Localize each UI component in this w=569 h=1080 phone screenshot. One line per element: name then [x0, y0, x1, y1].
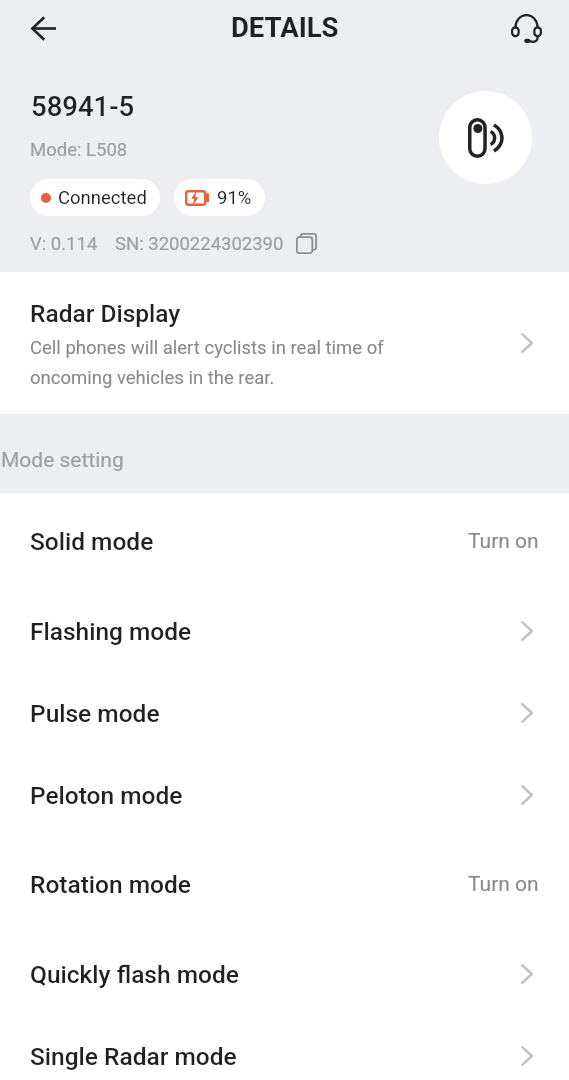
button[interactable]: Solid mode	[0, 493, 569, 590]
staticText: Flashing mode	[30, 617, 521, 646]
staticText: Mode setting	[1, 448, 124, 473]
staticText: SN: 3200224302390	[115, 233, 284, 255]
button[interactable]: Flashing mode	[0, 590, 569, 672]
staticText: DETAILS	[231, 11, 339, 43]
button[interactable]: Rotation mode	[0, 836, 569, 933]
staticText: Pulse mode	[30, 699, 521, 728]
button[interactable]: Connected	[30, 179, 160, 216]
button[interactable]: Pulse mode	[0, 672, 569, 754]
staticText: Turn on	[468, 529, 539, 554]
staticText: Radar Display	[30, 299, 181, 328]
staticText: Rotation mode	[30, 870, 462, 899]
staticText: Solid mode	[30, 527, 462, 556]
staticText: Quickly flash mode	[30, 960, 521, 989]
staticText: 58941-5	[31, 90, 135, 122]
button[interactable]: Quickly flash mode	[0, 933, 569, 1015]
button[interactable]: Device image	[439, 91, 532, 184]
button[interactable]: Copy serial number	[291, 228, 321, 258]
button[interactable]: Customer support	[502, 4, 550, 52]
staticText: Single Radar mode	[30, 1042, 521, 1071]
button[interactable]: Back	[19, 4, 67, 52]
staticText: Turn on	[468, 872, 539, 897]
button[interactable]: Peloton mode	[0, 754, 569, 836]
staticText: Mode: L508	[30, 139, 128, 161]
staticText: Peloton mode	[30, 781, 521, 810]
staticText: Connected	[58, 187, 147, 209]
staticText: 91%	[217, 187, 252, 209]
button[interactable]: Single Radar mode	[0, 1015, 569, 1080]
button[interactable]: 91%	[174, 179, 265, 216]
staticText: V: 0.114	[30, 233, 98, 255]
staticText: Cell phones will alert cyclists in real …	[30, 337, 384, 388]
button[interactable]: Radar Display	[0, 272, 569, 414]
